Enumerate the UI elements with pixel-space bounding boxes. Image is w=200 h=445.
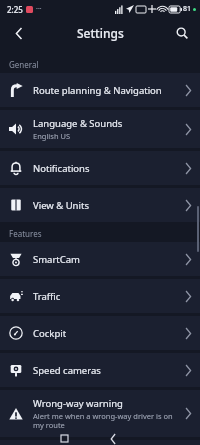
button[interactable]: Back [104,432,122,445]
button[interactable]: Notifications [0,151,200,185]
staticText: Features [9,228,42,239]
staticText: Traffic [33,290,61,303]
staticText: Wrong-way warning [33,397,123,410]
button[interactable]: Language & Sounds [0,110,200,148]
button[interactable]: Cockpit [0,316,200,350]
button[interactable]: Favorites panel [0,440,200,445]
staticText: Settings [77,25,124,41]
staticText: English US [33,131,71,141]
staticText: 81 [183,4,192,14]
staticText: General [9,59,39,70]
staticText: Route planning & Navigation [33,84,162,97]
staticText: Language & Sounds [33,117,123,130]
staticText: View & Units [33,199,89,212]
staticText: Cockpit [33,327,67,340]
staticText: Notifications [33,162,90,175]
staticText: Speed cameras [33,364,101,377]
staticText: ··· [36,4,42,14]
button[interactable]: Wrong-way warning [0,390,200,437]
button[interactable]: SmartCam [0,242,200,276]
button[interactable]: Recent apps [55,432,73,445]
staticText: Alert me when a wrong-way driver is on m… [33,411,179,430]
staticText: 2:25 [7,4,23,15]
button[interactable]: Route planning & Navigation [0,73,200,107]
staticText: SmartCam [33,253,80,266]
button[interactable]: Speed cameras [0,353,200,387]
button[interactable]: View & Units [0,188,200,222]
button[interactable]: Back [6,20,32,46]
button[interactable]: Search [169,20,195,46]
button[interactable]: Traffic [0,279,200,313]
